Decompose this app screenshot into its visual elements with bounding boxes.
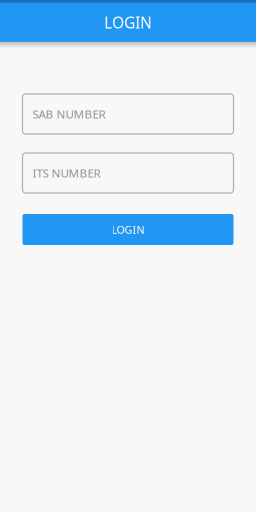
staticText: SAB NUMBER [32,106,105,122]
button[interactable]: LOGIN [22,214,233,245]
staticText: ITS NUMBER [32,165,100,181]
staticText: LOGIN [111,222,144,237]
button[interactable]: ITS NUMBER [22,153,233,193]
button[interactable]: SAB NUMBER [22,94,233,134]
staticText: LOGIN [104,12,152,33]
